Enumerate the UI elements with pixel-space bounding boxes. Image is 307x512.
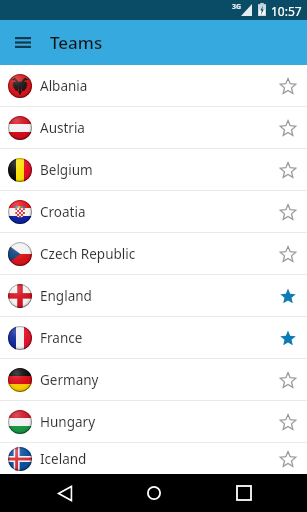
button[interactable]: Remove France from favourites [269,319,307,357]
button[interactable]: Czech Republic [0,233,307,274]
button[interactable]: Hungary [0,401,307,442]
button[interactable]: Add Germany to favourites [269,361,307,399]
button[interactable]: Remove England from favourites [269,277,307,315]
button[interactable]: Add Croatia to favourites [269,193,307,231]
button[interactable]: Back [51,479,79,507]
button[interactable]: Add Iceland to favourites [269,443,307,474]
staticText: Germany [40,371,99,389]
staticText: 3G [232,2,242,12]
button[interactable]: England [0,275,307,316]
button[interactable]: Add Hungary to favourites [269,403,307,441]
button[interactable]: Add Czech Republic to favourites [269,235,307,273]
staticText: Croatia [40,203,86,221]
button[interactable]: Belgium [0,149,307,190]
button[interactable]: Germany [0,359,307,400]
staticText: Hungary [40,413,96,431]
button[interactable]: Croatia [0,191,307,232]
button[interactable]: Open navigation drawer [6,26,40,60]
staticText: Albania [40,77,88,95]
staticText: Teams [50,31,103,54]
button[interactable]: Add Austria to favourites [269,109,307,147]
staticText: Iceland [40,450,87,468]
staticText: Czech Republic [40,245,136,263]
staticText: Belgium [40,161,93,179]
button[interactable]: Add Albania to favourites [269,67,307,105]
button[interactable]: Iceland [0,443,307,474]
staticText: Austria [40,119,85,137]
button[interactable]: Home [140,479,168,507]
button[interactable]: France [0,317,307,358]
staticText: England [40,287,92,305]
staticText: France [40,329,83,347]
button[interactable]: Add Belgium to favourites [269,151,307,189]
button[interactable]: Albania [0,65,307,106]
staticText: 10:57 [271,3,302,19]
button[interactable]: Austria [0,107,307,148]
button[interactable]: Recent apps [230,479,258,507]
